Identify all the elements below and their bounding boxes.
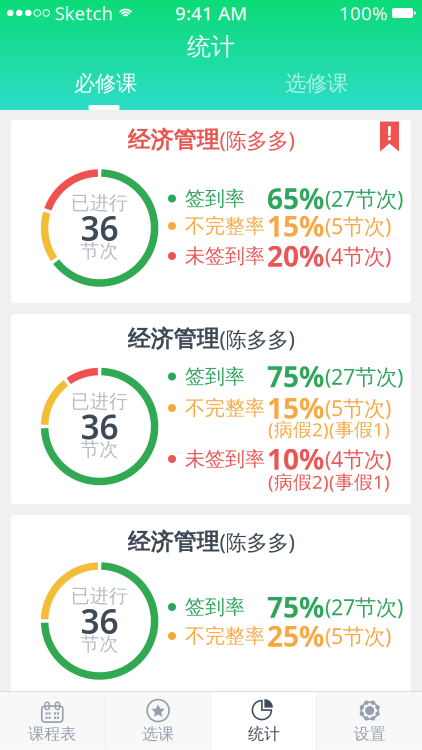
staticText: (5节次) <box>325 622 391 650</box>
staticText: 签到率 <box>185 595 245 619</box>
staticText: 节次 <box>81 632 119 655</box>
staticText: (5节次) <box>325 212 391 240</box>
button[interactable]: 经济管理 <box>11 120 411 303</box>
staticText: (陈多多) <box>219 528 294 556</box>
staticText: 已进行 <box>71 191 128 214</box>
staticText: 未签到率 <box>185 447 265 471</box>
staticText: 10% <box>267 440 324 478</box>
staticText: 必修课 <box>74 70 137 97</box>
button[interactable]: 设置 <box>317 692 422 750</box>
staticText: 统计 <box>187 32 235 61</box>
staticText: 不完整率 <box>185 214 265 238</box>
staticText: 65% <box>267 180 324 217</box>
staticText: 25% <box>267 617 324 655</box>
staticText: 15% <box>267 207 324 245</box>
staticText: (5节次) <box>325 394 391 422</box>
button[interactable]: 必修课 <box>0 66 211 100</box>
staticText: 选修课 <box>285 70 348 97</box>
staticText: ! <box>386 119 392 146</box>
staticText: 75% <box>267 358 324 395</box>
button[interactable]: 经济管理 <box>11 314 411 504</box>
staticText: 节次 <box>81 239 119 262</box>
staticText: (陈多多) <box>219 325 294 353</box>
staticText: 已进行 <box>71 584 128 607</box>
staticText: 签到率 <box>185 364 245 389</box>
staticText: (4节次) <box>325 242 391 270</box>
button[interactable]: 统计 <box>211 692 316 750</box>
staticText: (27节次) <box>325 184 403 213</box>
staticText: 100% <box>339 1 388 25</box>
staticText: 9:41 AM <box>175 1 247 25</box>
staticText: (4节次) <box>325 445 391 473</box>
staticText: 15% <box>267 389 324 427</box>
staticText: (陈多多) <box>219 126 294 154</box>
staticText: 经济管理 <box>127 325 219 353</box>
button[interactable]: 课程表 <box>0 692 105 750</box>
staticText: 75% <box>267 588 324 626</box>
staticText: 选课 <box>142 724 174 744</box>
staticText: (病假2)(事假1) <box>268 469 390 494</box>
staticText: Sketch <box>54 1 113 25</box>
staticText: 设置 <box>354 724 386 744</box>
staticText: 经济管理 <box>127 528 219 556</box>
staticText: 课程表 <box>28 724 76 744</box>
staticText: 36 <box>81 206 119 250</box>
button[interactable]: 选修课 <box>211 66 422 100</box>
staticText: 不完整率 <box>185 624 265 648</box>
staticText: 36 <box>81 599 119 643</box>
button[interactable]: 选课 <box>106 692 211 750</box>
button[interactable]: 经济管理 <box>11 515 411 705</box>
staticText: (27节次) <box>325 362 403 391</box>
staticText: 节次 <box>81 438 119 461</box>
staticText: 不完整率 <box>185 396 265 420</box>
staticText: 经济管理 <box>127 126 219 154</box>
staticText: 20% <box>267 237 324 275</box>
staticText: 统计 <box>248 724 280 744</box>
staticText: (病假2)(事假1) <box>268 417 390 441</box>
staticText: (27节次) <box>325 593 403 621</box>
staticText: 签到率 <box>185 186 245 211</box>
staticText: 36 <box>81 404 119 449</box>
staticText: 未签到率 <box>185 244 265 268</box>
staticText: 已进行 <box>71 390 128 413</box>
